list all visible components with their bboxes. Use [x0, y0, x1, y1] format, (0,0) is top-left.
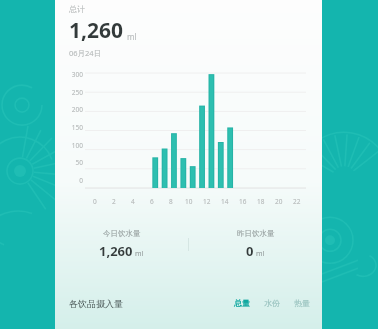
staticText: 14: [221, 197, 229, 206]
staticText: 250: [71, 88, 83, 97]
staticText: 热量: [294, 298, 310, 308]
staticText: 昨日饮水量: [237, 229, 275, 238]
staticText: ml: [127, 31, 137, 42]
staticText: 1,260: [69, 16, 124, 45]
staticText: 12: [203, 197, 211, 206]
staticText: 100: [71, 141, 83, 150]
staticText: 各饮品摄入量: [69, 298, 123, 309]
staticText: 200: [71, 105, 83, 114]
button[interactable]: 今日饮水量: [55, 229, 188, 260]
staticText: 300: [71, 70, 83, 79]
staticText: 16: [239, 197, 247, 206]
staticText: 8: [169, 197, 173, 206]
staticText: 06月24日: [69, 48, 102, 58]
staticText: 今日饮水量: [103, 229, 141, 238]
button[interactable]: 热量: [292, 295, 312, 311]
button[interactable]: 总量: [232, 295, 252, 311]
staticText: 18: [257, 197, 265, 206]
staticText: 0: [79, 176, 83, 185]
staticText: 0: [93, 197, 97, 206]
staticText: ml: [256, 249, 265, 259]
staticText: 水份: [264, 298, 280, 308]
staticText: 150: [71, 123, 83, 132]
staticText: 20: [275, 197, 283, 206]
staticText: 2: [112, 197, 116, 206]
staticText: ml: [135, 249, 144, 259]
button[interactable]: 水份: [262, 295, 282, 311]
staticText: 0: [246, 242, 254, 260]
staticText: 50: [75, 158, 83, 167]
staticText: 总量: [234, 298, 250, 308]
button[interactable]: 昨日饮水量: [189, 229, 322, 260]
staticText: 22: [293, 197, 301, 206]
staticText: 10: [185, 197, 193, 206]
staticText: 4: [131, 197, 135, 206]
staticText: 6: [150, 197, 154, 206]
staticText: 1,260: [99, 242, 133, 260]
staticText: 总计: [69, 4, 85, 14]
